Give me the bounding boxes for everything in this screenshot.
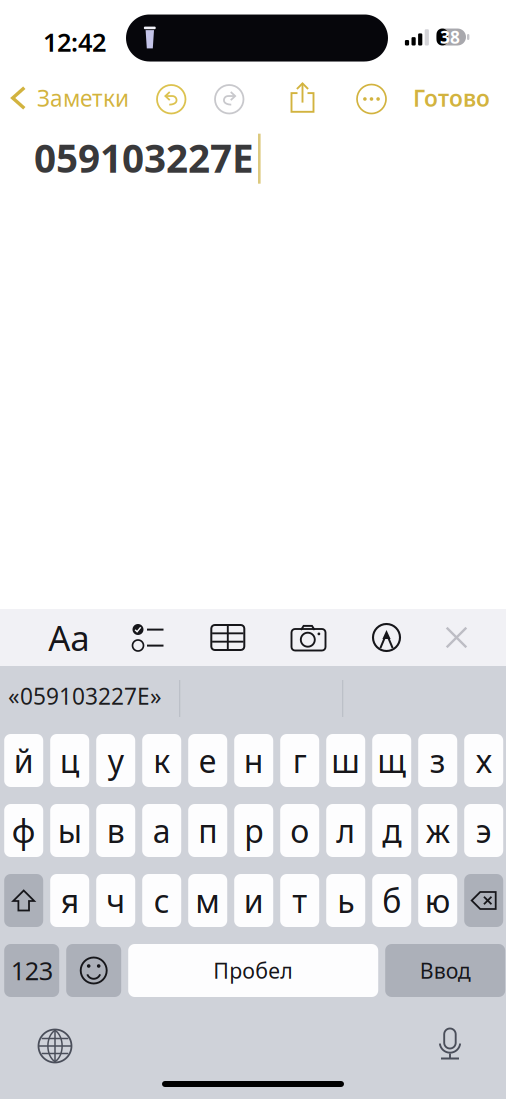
staticText: «059103227E»	[8, 681, 162, 711]
button[interactable]: о	[280, 804, 319, 857]
button[interactable]: Dictate	[423, 1019, 477, 1073]
button[interactable]: More	[357, 84, 386, 113]
button[interactable]: ц	[50, 734, 89, 787]
button[interactable]: к	[142, 734, 181, 787]
staticText: 38	[440, 25, 460, 48]
button[interactable]: н	[234, 734, 273, 787]
staticText: я	[61, 879, 79, 922]
button[interactable]: у	[96, 734, 135, 787]
button[interactable]: м	[188, 874, 227, 927]
staticText: д	[382, 809, 401, 852]
staticText: к	[153, 739, 170, 782]
staticText: п	[198, 809, 217, 852]
staticText: т	[292, 879, 307, 922]
staticText: а	[153, 809, 171, 852]
staticText: ы	[58, 809, 82, 852]
button[interactable]: з	[418, 734, 457, 787]
button[interactable]: 123	[4, 944, 59, 997]
button[interactable]: ш	[326, 734, 365, 787]
staticText: Готово	[413, 83, 490, 113]
button[interactable]: ж	[418, 804, 457, 857]
button[interactable]: Table	[200, 614, 256, 661]
staticText: з	[430, 739, 446, 782]
button[interactable]: Camera	[280, 614, 336, 661]
staticText: 059103227E	[34, 132, 254, 183]
staticText: ф	[12, 809, 36, 852]
staticText: Заметки	[37, 83, 129, 113]
staticText: ж	[426, 809, 450, 852]
button[interactable]: Пробел	[128, 944, 378, 997]
button[interactable]: ы	[50, 804, 89, 857]
staticText: ч	[106, 879, 125, 922]
staticText: Ввод	[420, 956, 471, 985]
button[interactable]: ь	[326, 874, 365, 927]
staticText: б	[382, 879, 401, 922]
button[interactable]: и	[234, 874, 273, 927]
staticText: о	[290, 809, 309, 852]
button[interactable]: б	[372, 874, 411, 927]
button[interactable]: Switch keyboard	[28, 1019, 82, 1073]
button[interactable]: щ	[372, 734, 411, 787]
button[interactable]: Redo	[215, 85, 243, 113]
staticText: л	[336, 809, 355, 852]
button[interactable]: Shift	[4, 874, 43, 927]
button[interactable]: Markup	[358, 614, 414, 661]
staticText: Aa	[48, 614, 89, 660]
staticText: ю	[425, 879, 451, 922]
staticText: 12:42	[43, 25, 106, 59]
button[interactable]: с	[142, 874, 181, 927]
staticText: ь	[337, 879, 354, 922]
staticText: р	[244, 809, 263, 852]
button[interactable]: л	[326, 804, 365, 857]
button[interactable]: э	[464, 804, 503, 857]
button[interactable]: Format	[41, 614, 97, 661]
staticText: э	[476, 809, 492, 852]
button[interactable]: г	[280, 734, 319, 787]
button[interactable]: д	[372, 804, 411, 857]
button[interactable]: п	[188, 804, 227, 857]
button[interactable]: а	[142, 804, 181, 857]
button[interactable]: р	[234, 804, 273, 857]
staticText: е	[199, 739, 217, 782]
button[interactable]: ч	[96, 874, 135, 927]
staticText: у	[108, 739, 124, 782]
staticText: щ	[377, 739, 406, 782]
button[interactable]: Hide keyboard	[428, 614, 484, 661]
staticText: х	[476, 739, 492, 782]
staticText: с	[154, 879, 170, 922]
button[interactable]: Undo	[157, 85, 185, 113]
button[interactable]: й	[4, 734, 43, 787]
button[interactable]: Ввод	[385, 944, 505, 997]
button[interactable]: е	[188, 734, 227, 787]
staticText: й	[14, 739, 34, 782]
button[interactable]: ю	[418, 874, 457, 927]
button[interactable]: Заметки	[0, 77, 137, 119]
button[interactable]: я	[50, 874, 89, 927]
staticText: и	[244, 879, 264, 922]
staticText: ш	[331, 739, 360, 782]
button[interactable]: ф	[4, 804, 43, 857]
staticText: н	[244, 739, 264, 782]
button[interactable]: Checklist	[120, 614, 176, 661]
staticText: Пробел	[213, 956, 293, 985]
staticText: в	[107, 809, 125, 852]
button[interactable]: Backspace	[464, 874, 503, 927]
staticText: ц	[60, 739, 80, 782]
staticText: 123	[11, 954, 53, 987]
button[interactable]: Share	[289, 82, 315, 113]
button[interactable]: в	[96, 804, 135, 857]
staticText: м	[195, 879, 220, 922]
button[interactable]: х	[464, 734, 503, 787]
button[interactable]: т	[280, 874, 319, 927]
button[interactable]: Готово	[413, 78, 490, 118]
button[interactable]: Emoji	[66, 944, 121, 997]
staticText: г	[293, 739, 307, 782]
button[interactable]: «059103227E»	[0, 674, 173, 718]
